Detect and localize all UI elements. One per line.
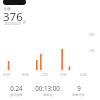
staticText: 100 — [89, 49, 95, 53]
staticText: 总时长 — [43, 93, 53, 97]
staticText: 0.24 — [10, 84, 23, 92]
staticText: 消耗千卡 — [72, 93, 85, 97]
button[interactable]: 9 — [63, 84, 94, 97]
staticText: 00:13:00 — [35, 84, 60, 92]
staticText: 2022/04/29 — [4, 22, 21, 26]
button[interactable]: 0.24 — [1, 84, 32, 97]
staticText: 24:00 — [80, 73, 87, 77]
staticText: 18:00 — [60, 73, 67, 77]
staticText: 步数 — [4, 7, 11, 11]
staticText: 步 — [23, 20, 27, 24]
staticText: 06:00 — [22, 73, 29, 77]
staticText: 步行距离 — [10, 93, 23, 97]
staticText: 00:00 — [3, 73, 10, 77]
staticText: 376 — [3, 9, 23, 25]
button[interactable]: 00:13:00 — [32, 84, 63, 97]
staticText: 9 — [77, 84, 81, 92]
staticText: 12:00 — [41, 73, 48, 77]
staticText: 200 — [89, 33, 95, 37]
